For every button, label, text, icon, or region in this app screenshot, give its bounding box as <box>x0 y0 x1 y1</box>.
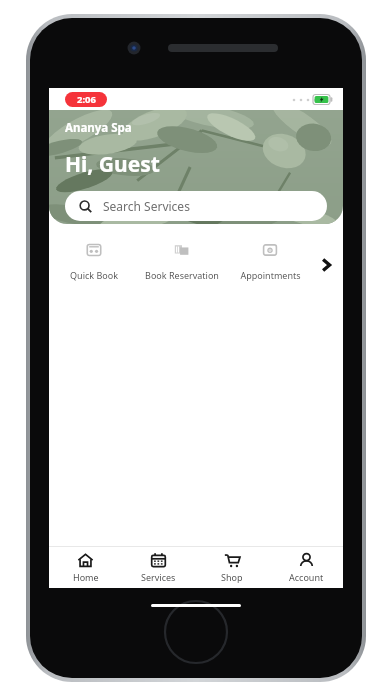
button[interactable]: Account <box>269 547 343 588</box>
staticText: Quick Book <box>70 269 118 281</box>
button[interactable]: Search Services <box>65 191 327 221</box>
staticText: Book Reservation <box>145 269 219 281</box>
button[interactable]: Home <box>49 547 122 588</box>
button[interactable]: Appointments <box>231 238 309 285</box>
button[interactable]: Book Reservation <box>133 238 231 285</box>
staticText: Search Services <box>103 198 190 214</box>
button[interactable]: More quick actions <box>313 252 339 278</box>
staticText: Account <box>289 571 324 583</box>
staticText: Ananya Spa <box>65 120 132 136</box>
staticText: 2:06 <box>77 93 96 106</box>
button[interactable]: Shop <box>195 547 269 588</box>
button[interactable]: Quick Book <box>55 238 133 285</box>
staticText: Appointments <box>240 269 301 281</box>
staticText: Services <box>141 571 176 583</box>
button[interactable]: Services <box>122 547 195 588</box>
staticText: Home <box>73 571 99 583</box>
staticText: Hi, Guest <box>65 150 160 179</box>
staticText: Shop <box>221 571 243 583</box>
